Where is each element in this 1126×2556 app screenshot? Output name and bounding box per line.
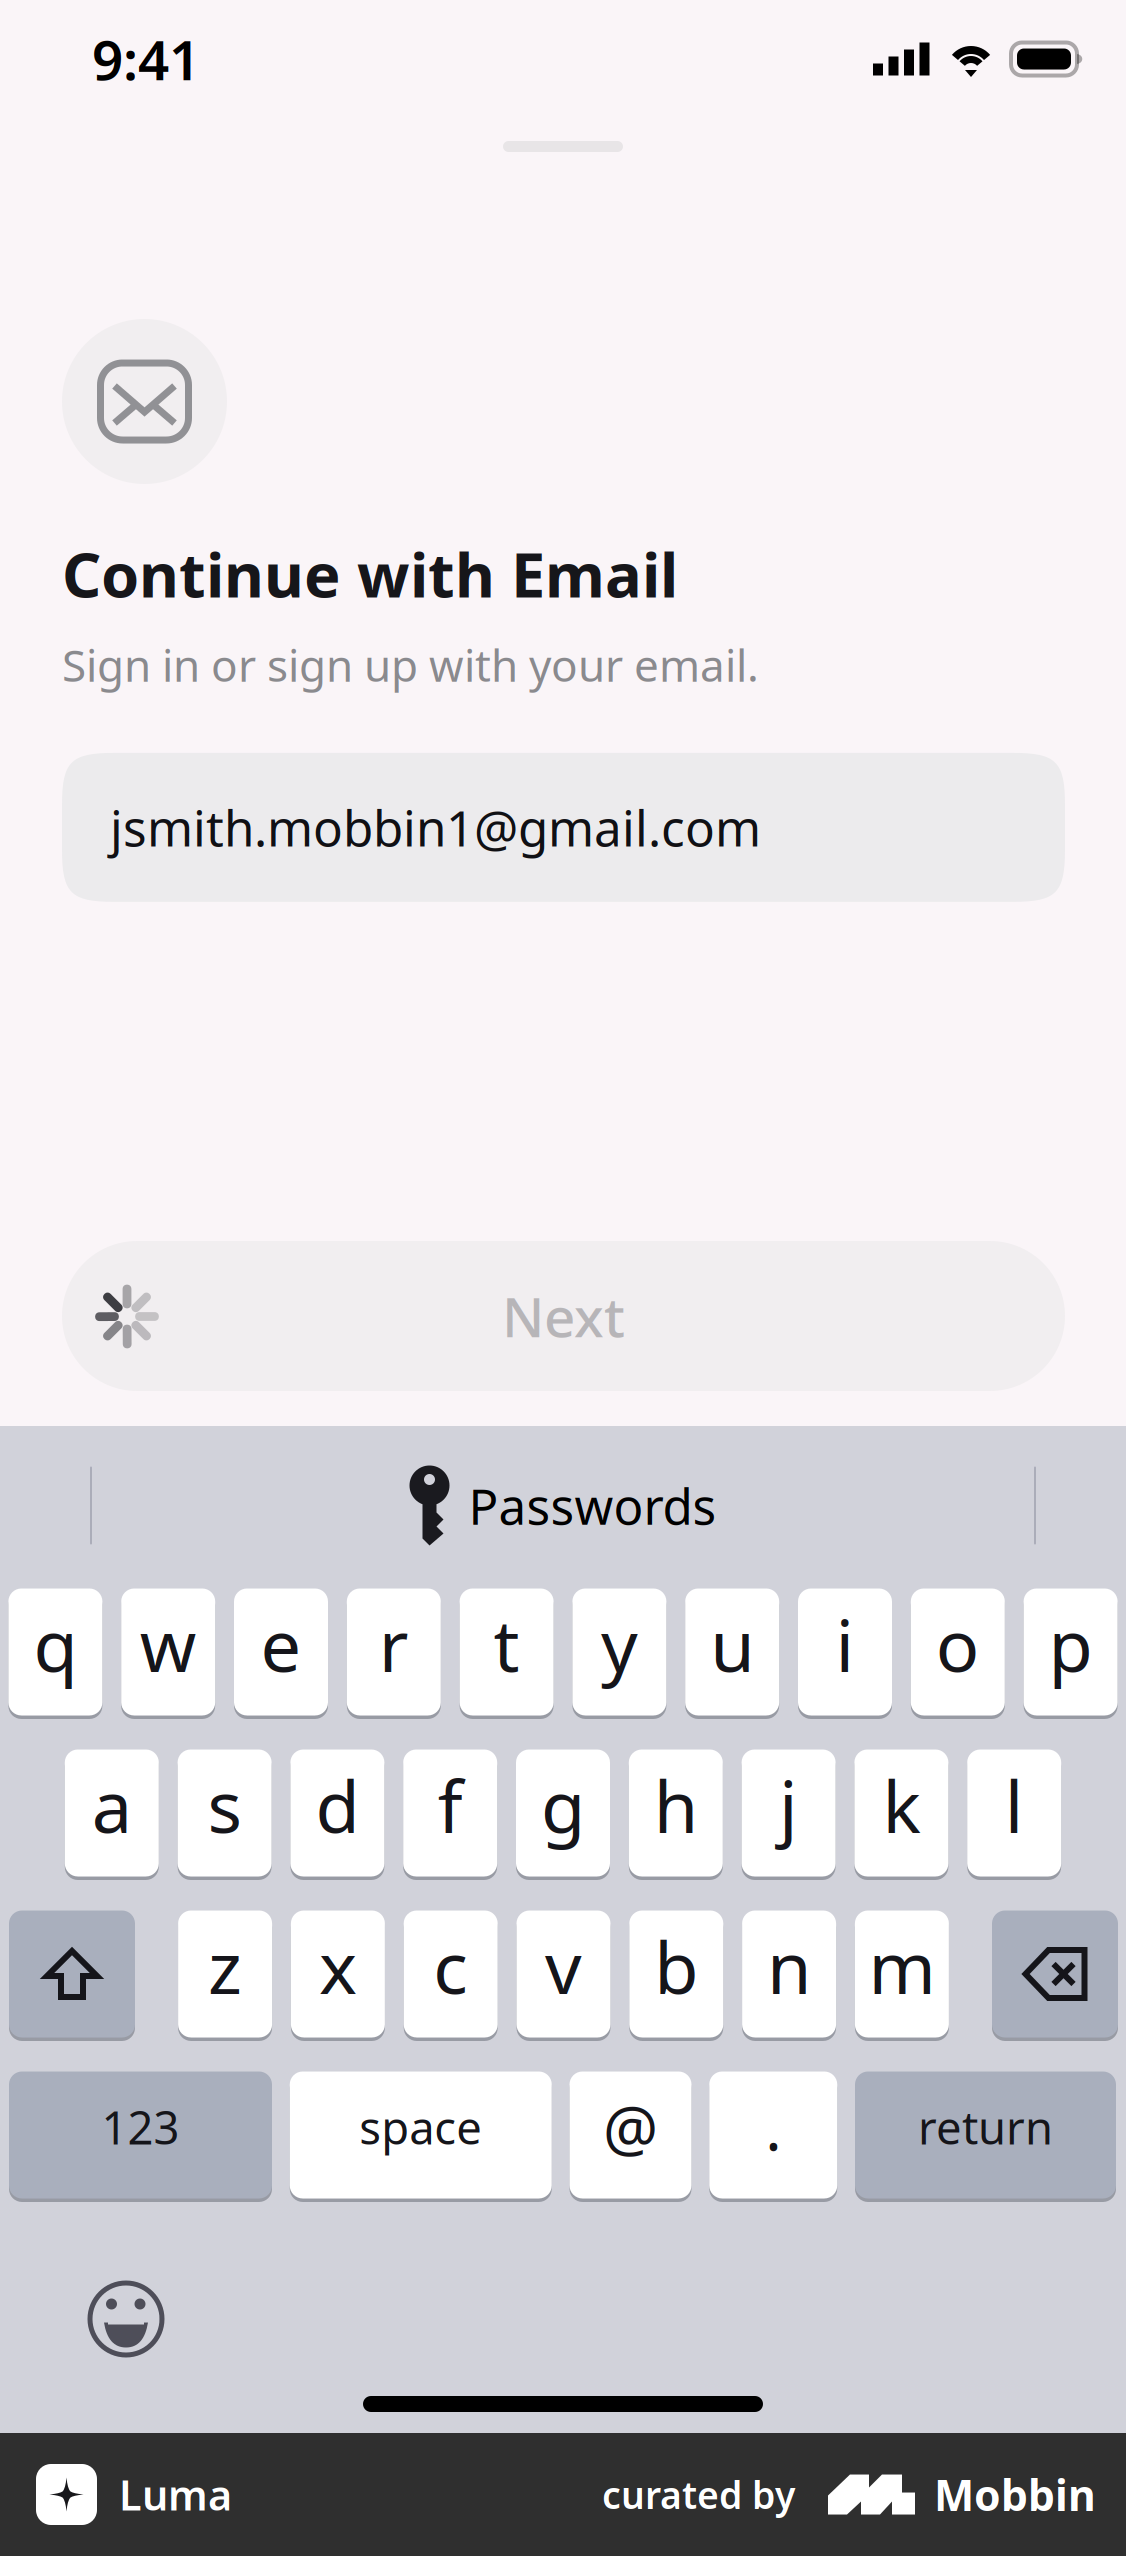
button[interactable]: r [347, 1585, 441, 1719]
staticText: f [438, 1757, 463, 1853]
button[interactable]: space [290, 2068, 552, 2202]
staticText: a [92, 1757, 132, 1853]
staticText: s [208, 1757, 242, 1853]
button[interactable]: return [855, 2068, 1116, 2202]
staticText: k [882, 1757, 920, 1853]
staticText: 123 [101, 2097, 179, 2157]
button[interactable]: Next [0, 1241, 1126, 1391]
staticText: z [208, 1918, 242, 2014]
button[interactable]: c [404, 1907, 498, 2041]
staticText: Continue with Email [62, 533, 678, 614]
button[interactable]: d [290, 1746, 384, 1880]
button[interactable]: n [742, 1907, 836, 2041]
staticText: Next [502, 1280, 625, 1352]
button[interactable]: h [629, 1746, 723, 1880]
button[interactable]: Passwords [409, 1465, 716, 1545]
staticText: i [835, 1596, 854, 1692]
button[interactable]: @ [569, 2068, 691, 2202]
button[interactable]: b [629, 1907, 723, 2041]
staticText: w [140, 1596, 197, 1692]
staticText: v [545, 1918, 582, 2014]
button[interactable]: w [121, 1585, 215, 1719]
button[interactable]: u [685, 1585, 779, 1719]
staticText: 9:41 [92, 23, 200, 95]
staticText: space [359, 2097, 482, 2157]
staticText: r [379, 1596, 409, 1692]
staticText: return [918, 2097, 1053, 2157]
button[interactable]: q [8, 1585, 102, 1719]
staticText: l [1005, 1757, 1024, 1853]
staticText: e [260, 1596, 301, 1692]
staticText: q [33, 1596, 77, 1692]
staticText: m [868, 1918, 935, 2014]
button[interactable]: z [178, 1907, 272, 2041]
staticText: x [319, 1918, 357, 2014]
button[interactable]: p [1024, 1585, 1118, 1719]
staticText: t [494, 1596, 520, 1692]
button[interactable]: f [403, 1746, 497, 1880]
button[interactable]: m [855, 1907, 949, 2041]
staticText: Luma [119, 2467, 232, 2522]
button[interactable]: Delete [992, 1907, 1118, 2041]
staticText: h [654, 1757, 698, 1853]
staticText: u [710, 1596, 754, 1692]
button[interactable]: i [798, 1585, 892, 1719]
staticText: p [1049, 1596, 1093, 1692]
button[interactable]: 123 [9, 2068, 272, 2202]
staticText: g [541, 1757, 585, 1853]
button[interactable]: a [65, 1746, 159, 1880]
staticText: j [779, 1757, 798, 1853]
staticText: d [315, 1757, 359, 1853]
button[interactable]: g [516, 1746, 610, 1880]
button[interactable]: l [967, 1746, 1061, 1880]
button[interactable]: o [911, 1585, 1005, 1719]
staticText: Passwords [468, 1473, 716, 1538]
button[interactable]: . [709, 2068, 837, 2202]
staticText: Mobbin [934, 2466, 1096, 2523]
button[interactable]: k [854, 1746, 948, 1880]
button[interactable]: e [234, 1585, 328, 1719]
staticText: jsmith.mobbin1@gmail.com [110, 795, 761, 860]
button[interactable]: x [291, 1907, 385, 2041]
button[interactable]: j [742, 1746, 836, 1880]
staticText: . [765, 2086, 781, 2168]
button[interactable]: t [460, 1585, 554, 1719]
staticText: c [433, 1918, 468, 2014]
staticText: b [654, 1918, 698, 2014]
button[interactable]: Shift [9, 1907, 135, 2041]
button[interactable]: s [178, 1746, 272, 1880]
staticText: n [767, 1918, 811, 2014]
staticText: o [936, 1596, 980, 1692]
button[interactable]: Emoji [87, 2280, 165, 2358]
staticText: curated by [602, 2470, 795, 2519]
button[interactable]: v [516, 1907, 610, 2041]
button[interactable]: y [572, 1585, 666, 1719]
staticText: Sign in or sign up with your email. [62, 635, 759, 694]
staticText: @ [603, 2086, 658, 2168]
staticText: y [601, 1596, 638, 1692]
